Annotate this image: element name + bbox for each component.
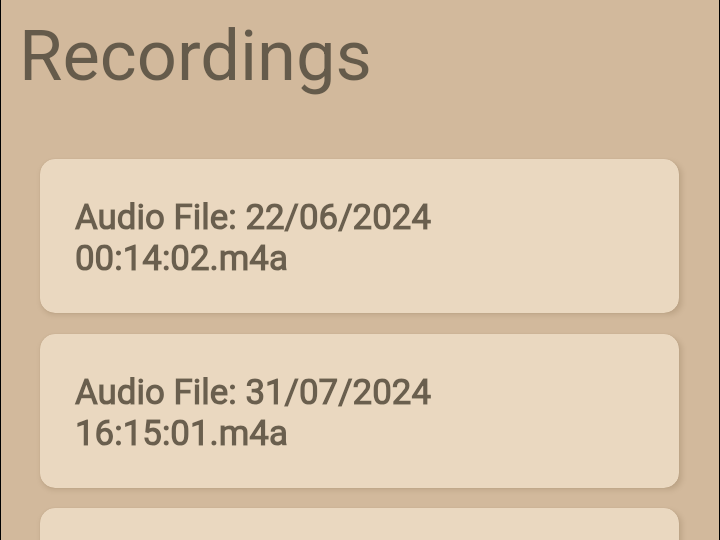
button[interactable]: Audio File: 31/07/2024 16:15:01.m4a	[40, 334, 679, 488]
staticText: Recordings	[19, 15, 372, 98]
button[interactable]: Audio File: 22/06/2024 00:14:02.m4a	[40, 159, 679, 313]
staticText: Audio File: 22/06/2024 00:14:02.m4a	[75, 197, 432, 279]
staticText: Audio File: 31/07/2024 16:15:01.m4a	[75, 372, 432, 454]
